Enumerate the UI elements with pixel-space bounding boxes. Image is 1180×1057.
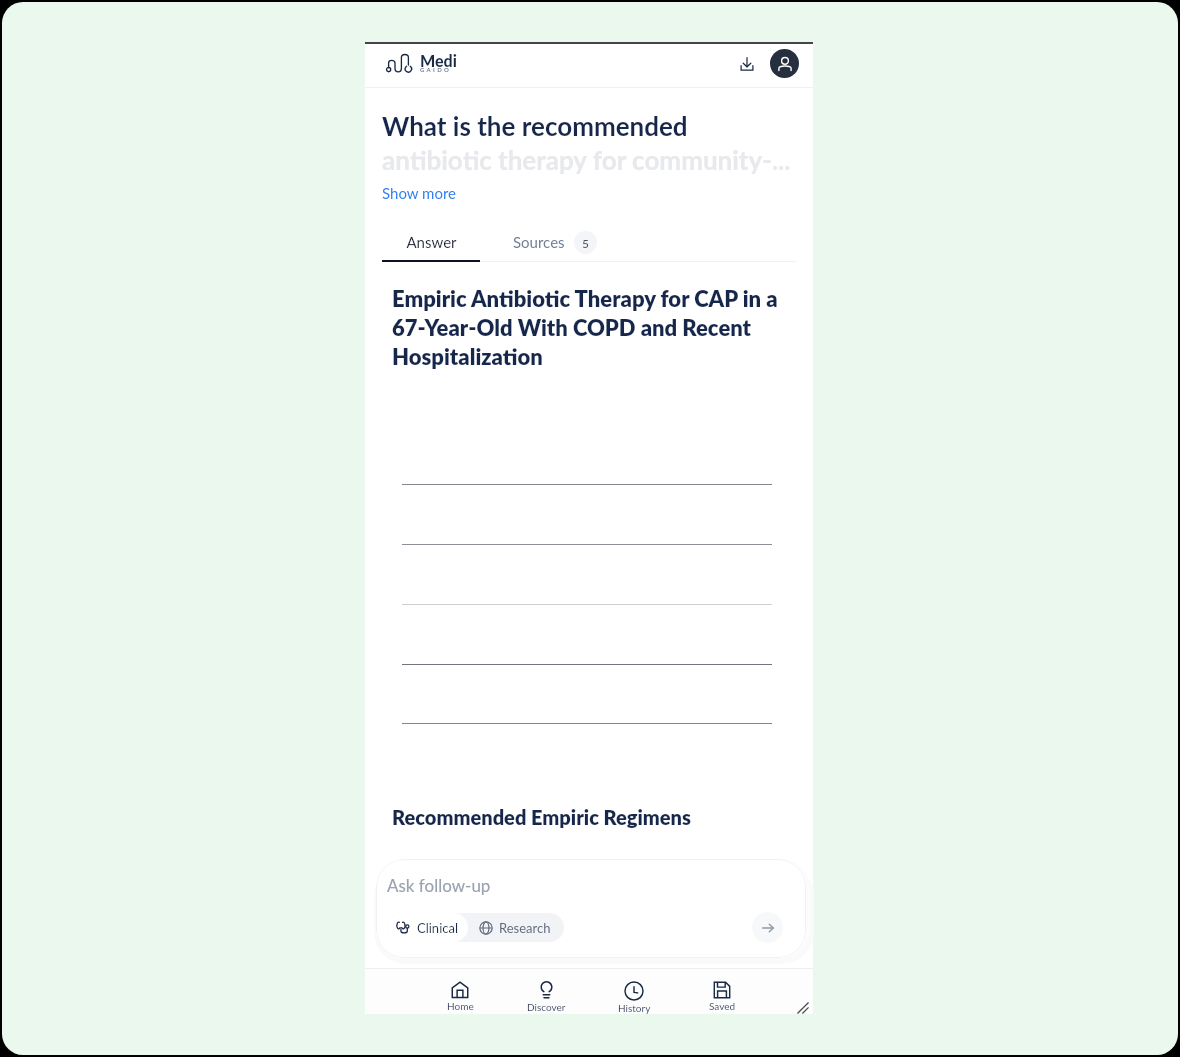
staticText: Medi bbox=[420, 51, 457, 70]
staticText: Discover bbox=[527, 1001, 566, 1013]
staticText: Home bbox=[447, 1000, 474, 1012]
button[interactable]: Send bbox=[752, 912, 783, 943]
staticText: GAIDO bbox=[420, 66, 452, 73]
button[interactable]: Medi bbox=[382, 48, 472, 81]
button[interactable]: Research bbox=[468, 913, 564, 942]
staticText: Clinical bbox=[417, 920, 458, 936]
staticText: 5 bbox=[582, 236, 589, 250]
staticText: Saved bbox=[709, 1000, 736, 1012]
staticText: antibiotic therapy for community-... bbox=[382, 144, 791, 175]
button[interactable]: Answer bbox=[382, 222, 480, 262]
staticText: Empiric Antibiotic Therapy for CAP in a … bbox=[392, 285, 792, 370]
button[interactable]: Show more bbox=[382, 184, 457, 202]
staticText: Ask follow-up bbox=[387, 875, 491, 895]
staticText: Research bbox=[499, 920, 551, 936]
staticText: Answer bbox=[406, 233, 457, 251]
staticText: What is the recommended bbox=[382, 110, 688, 141]
staticText: Show more bbox=[382, 184, 457, 202]
button[interactable]: Sources bbox=[505, 223, 605, 261]
staticText: History bbox=[618, 1002, 651, 1014]
button[interactable]: Home bbox=[430, 977, 490, 1014]
button[interactable]: History bbox=[604, 977, 664, 1016]
staticText: Sources bbox=[513, 233, 565, 251]
staticText: Recommended Empiric Regimens bbox=[392, 805, 691, 829]
button[interactable]: Discover bbox=[516, 977, 576, 1015]
button[interactable]: Clinical bbox=[387, 913, 468, 942]
button[interactable]: Profile bbox=[770, 49, 799, 78]
button[interactable]: Saved bbox=[692, 977, 752, 1014]
button[interactable]: Download bbox=[730, 47, 763, 80]
